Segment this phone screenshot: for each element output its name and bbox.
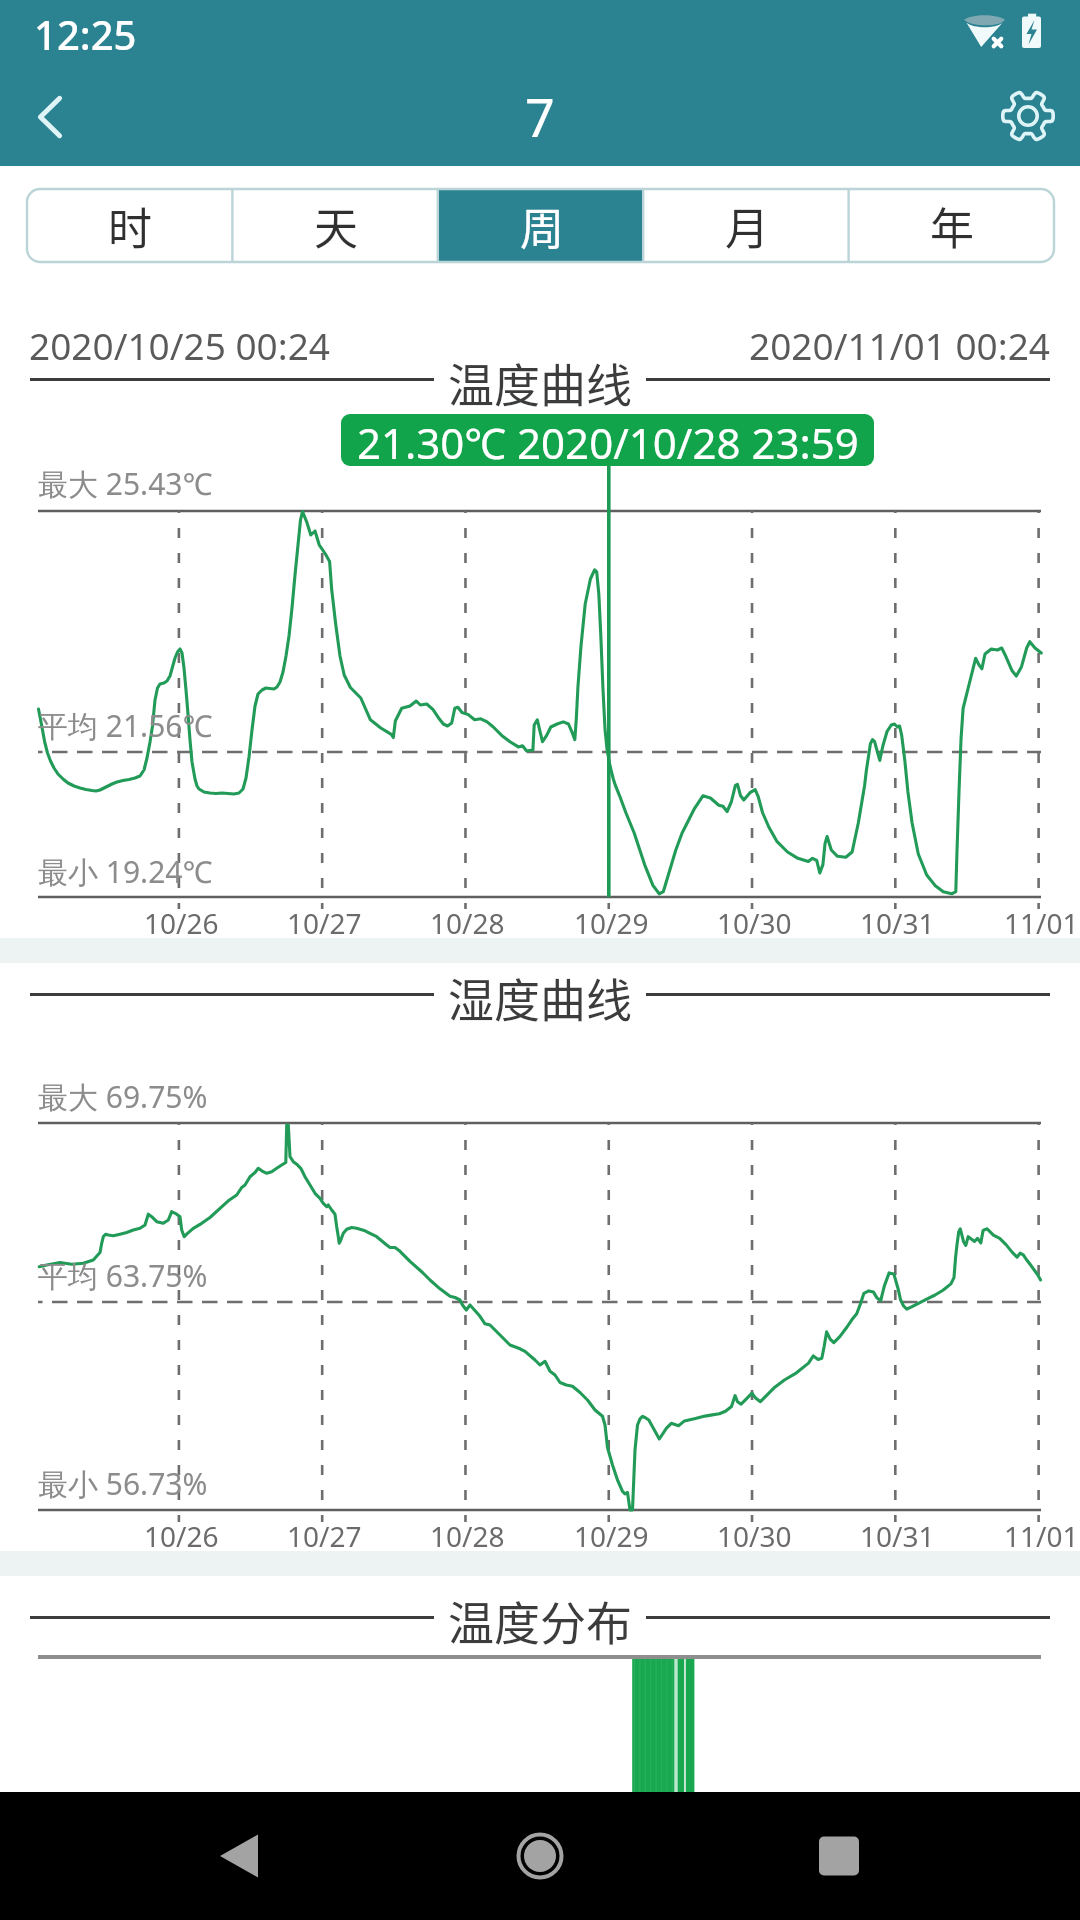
staticText: 湿度曲线 (448, 964, 632, 1024)
staticText: 时 (108, 194, 152, 258)
button[interactable]: Back (2, 70, 98, 166)
button[interactable]: 天 (233, 189, 439, 262)
staticText: 2020/10/25 00:24 (29, 320, 331, 370)
staticText: 21.30℃ 2020/10/28 23:59 (357, 414, 859, 466)
staticText: 11/01 (1004, 1517, 1079, 1555)
button[interactable]: 周 (439, 189, 644, 262)
button[interactable]: 时 (27, 189, 233, 262)
staticText: 7 (525, 81, 555, 152)
button[interactable]: Back (177, 1794, 301, 1918)
button[interactable]: Temperature curve chart (38, 505, 1041, 903)
staticText: 12:25 (34, 7, 137, 61)
button[interactable]: Home (478, 1794, 602, 1918)
button[interactable]: Settings (980, 70, 1076, 166)
staticText: 10/31 (860, 1517, 935, 1555)
staticText: 2020/11/01 00:24 (749, 320, 1051, 370)
staticText: 10/26 (144, 904, 219, 942)
button[interactable]: Humidity curve chart (38, 1117, 1041, 1516)
staticText: 10/31 (860, 904, 935, 942)
staticText: 10/27 (287, 1517, 362, 1555)
staticText: 月 (725, 194, 769, 258)
staticText: 天 (314, 194, 358, 258)
staticText: 温度分布 (448, 1587, 632, 1647)
staticText: 周 (520, 194, 564, 258)
button[interactable]: 月 (644, 189, 849, 262)
staticText: 10/27 (287, 904, 362, 942)
staticText: 11/01 (1004, 904, 1079, 942)
staticText: 最大 69.75% (38, 1076, 208, 1117)
staticText: 10/30 (717, 904, 792, 942)
staticText: 平均 21.56℃ (38, 705, 213, 746)
staticText: 10/29 (574, 904, 649, 942)
staticText: 10/30 (717, 1517, 792, 1555)
staticText: 最小 56.73% (38, 1463, 208, 1504)
button[interactable]: Recent apps (777, 1794, 901, 1918)
staticText: 温度曲线 (448, 349, 632, 409)
staticText: 最小 19.24℃ (38, 851, 213, 892)
staticText: 平均 63.75% (38, 1255, 208, 1296)
staticText: 年 (930, 194, 974, 258)
staticText: 10/28 (430, 904, 505, 942)
button[interactable]: 年 (849, 189, 1054, 262)
staticText: 10/26 (144, 1517, 219, 1555)
staticText: 10/29 (574, 1517, 649, 1555)
staticText: 最大 25.43℃ (38, 463, 213, 504)
staticText: 10/28 (430, 1517, 505, 1555)
